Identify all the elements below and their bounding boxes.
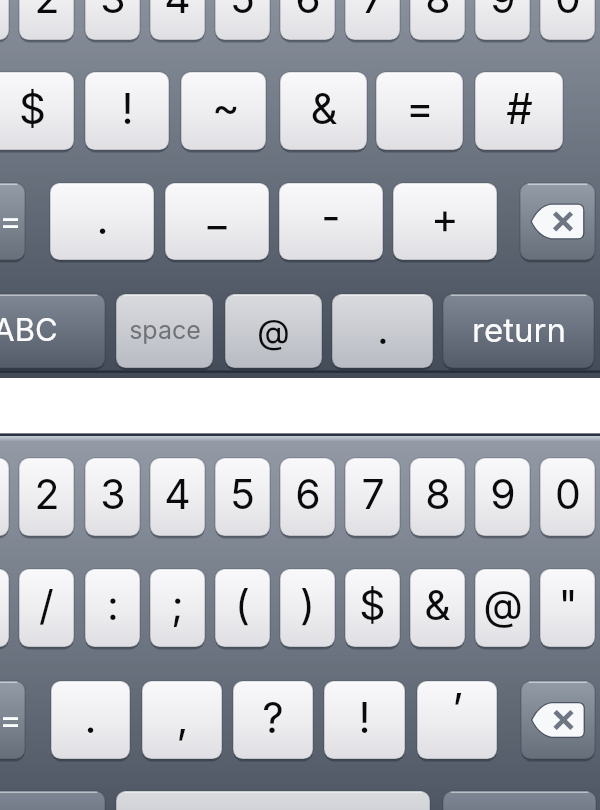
button[interactable]: 9 <box>475 0 530 40</box>
staticText: @ <box>483 580 523 630</box>
button[interactable]: . <box>50 183 154 260</box>
staticText: _ <box>207 185 227 236</box>
button[interactable]: ABC <box>0 791 105 810</box>
button[interactable]: 0 <box>540 0 595 40</box>
staticText: ( <box>235 580 250 630</box>
button[interactable]: 9 <box>475 458 530 536</box>
button[interactable]: $ <box>345 569 400 647</box>
button[interactable]: 4 <box>150 458 205 536</box>
staticText: 6 <box>295 0 321 23</box>
button[interactable]: 8 <box>410 458 465 536</box>
staticText: # <box>506 83 533 134</box>
button[interactable]: return <box>443 294 594 368</box>
staticText: ’ <box>452 683 463 734</box>
staticText: 3 <box>100 469 126 519</box>
staticText: ABC <box>0 311 58 349</box>
button[interactable]: & <box>410 569 465 647</box>
button[interactable]: Backspace <box>521 681 595 759</box>
staticText: ; <box>171 580 184 630</box>
staticText: return <box>472 310 566 350</box>
staticText: ! <box>358 692 371 743</box>
button[interactable]: space <box>116 791 430 810</box>
staticText: : <box>107 580 119 630</box>
button[interactable]: Backspace <box>520 183 595 260</box>
staticText: 8 <box>425 469 451 519</box>
staticText: . <box>96 193 109 244</box>
button[interactable]: _ <box>165 183 269 260</box>
button[interactable]: return <box>443 791 596 810</box>
staticText: $ <box>19 83 46 134</box>
button[interactable]: ~ <box>181 72 266 150</box>
button[interactable]: & <box>280 72 367 150</box>
button[interactable]: : <box>85 569 140 647</box>
staticText: #+= <box>0 200 22 241</box>
staticText: / <box>39 580 54 630</box>
button[interactable]: 3 <box>85 0 140 40</box>
button[interactable]: 0 <box>540 458 595 536</box>
button[interactable]: $ <box>0 72 74 150</box>
button[interactable]: + <box>393 183 497 260</box>
staticText: 9 <box>490 0 516 23</box>
button[interactable]: = <box>376 72 463 150</box>
button[interactable]: , <box>142 681 222 759</box>
button[interactable]: ’ <box>417 681 497 759</box>
button[interactable]: space <box>116 294 213 368</box>
staticText: 4 <box>164 0 191 23</box>
staticText: & <box>310 83 338 134</box>
button[interactable]: 2 <box>19 458 74 536</box>
button[interactable]: . <box>332 294 433 368</box>
staticText: 7 <box>361 469 385 519</box>
button[interactable]: @ <box>225 294 322 368</box>
staticText: 9 <box>490 469 516 519</box>
button[interactable]: 6 <box>280 0 335 40</box>
button[interactable]: ABC <box>0 294 105 368</box>
staticText: @ <box>257 311 290 352</box>
button[interactable]: - <box>0 569 9 647</box>
button[interactable]: . <box>51 681 130 759</box>
staticText: #+= <box>0 699 22 740</box>
staticText: 0 <box>555 469 581 519</box>
button[interactable]: 5 <box>215 458 270 536</box>
button[interactable]: 6 <box>280 458 335 536</box>
staticText: . <box>84 692 97 743</box>
staticText: ) <box>300 580 315 630</box>
staticText: 0 <box>555 0 581 23</box>
button[interactable]: ! <box>324 681 405 759</box>
staticText: space <box>129 315 201 345</box>
button[interactable]: / <box>19 569 74 647</box>
button[interactable]: 5 <box>215 0 270 40</box>
staticText: . <box>377 304 389 354</box>
button[interactable]: @ <box>475 569 530 647</box>
staticText: 7 <box>361 0 385 23</box>
button[interactable]: 1 <box>0 0 9 40</box>
button[interactable]: 3 <box>85 458 140 536</box>
button[interactable]: " <box>540 569 595 647</box>
staticText: & <box>424 580 451 630</box>
staticText: 5 <box>230 0 255 23</box>
button[interactable]: - <box>279 183 383 260</box>
staticText: 2 <box>34 0 60 23</box>
button[interactable]: ) <box>280 569 335 647</box>
button[interactable]: #+= <box>0 681 25 759</box>
staticText: = <box>406 82 434 133</box>
button[interactable]: 1 <box>0 458 9 536</box>
button[interactable]: ; <box>150 569 205 647</box>
button[interactable]: 7 <box>345 0 400 40</box>
button[interactable]: # <box>475 72 563 150</box>
button[interactable]: 2 <box>19 0 74 40</box>
button[interactable]: 4 <box>150 0 205 40</box>
button[interactable]: 8 <box>410 0 465 40</box>
staticText: - <box>321 191 341 242</box>
button[interactable]: ? <box>233 681 313 759</box>
button[interactable]: ( <box>215 569 270 647</box>
staticText: 5 <box>230 469 255 519</box>
staticText: ? <box>262 692 284 743</box>
button[interactable]: 7 <box>345 458 400 536</box>
staticText: , <box>176 692 189 743</box>
staticText: 3 <box>100 0 126 23</box>
button[interactable]: #+= <box>0 183 25 260</box>
staticText: 2 <box>34 469 60 519</box>
staticText: 6 <box>295 469 321 519</box>
staticText: 4 <box>164 469 191 519</box>
button[interactable]: ! <box>85 72 169 150</box>
